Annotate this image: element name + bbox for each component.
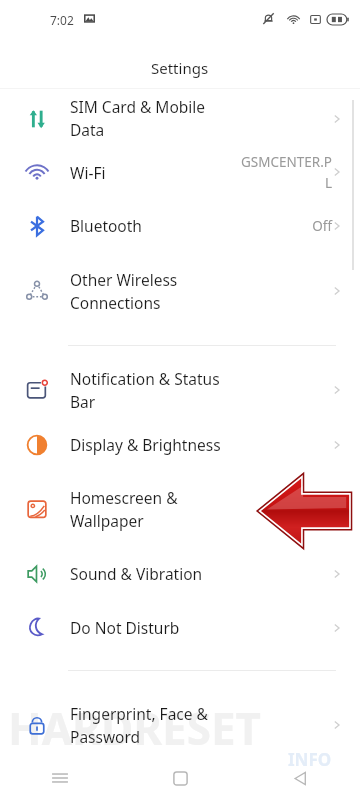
staticText: Fingerprint, Face & Password	[70, 703, 208, 748]
button[interactable]: Homescreen & Wallpaper	[0, 471, 360, 547]
staticText: Bluetooth	[70, 215, 142, 236]
staticText: 7:02	[50, 12, 74, 28]
button[interactable]: Display & Brightness	[0, 418, 360, 471]
button[interactable]: Do Not Disturb	[0, 600, 360, 655]
staticText: HARDRESET	[8, 698, 261, 758]
staticText: Display & Brightness	[70, 434, 221, 455]
staticText: Homescreen & Wallpaper	[70, 487, 178, 532]
button[interactable]: Notification & Status Bar	[0, 362, 360, 418]
staticText: Notification & Status Bar	[70, 368, 240, 413]
button[interactable]: Wi-Fi	[0, 145, 360, 199]
button[interactable]: Back	[240, 756, 360, 800]
staticText: Sound & Vibration	[70, 563, 203, 584]
staticText: Settings	[151, 58, 209, 78]
button[interactable]: Fingerprint, Face & Password	[0, 690, 360, 760]
button[interactable]: Bluetooth	[0, 199, 360, 252]
staticText: Off	[207, 217, 332, 235]
staticText: SIM Card & Mobile Data	[70, 96, 240, 141]
button[interactable]: SIM Card & Mobile Data	[0, 92, 360, 145]
staticText: GSMCENTER.P L	[207, 153, 332, 192]
button[interactable]: Sound & Vibration	[0, 547, 360, 600]
button[interactable]: Home	[120, 756, 240, 800]
button[interactable]: Other Wireless Connections	[0, 252, 360, 330]
staticText: Wi-Fi	[70, 162, 106, 183]
button[interactable]: Recent apps	[0, 756, 120, 800]
staticText: Other Wireless Connections	[70, 269, 178, 314]
staticText: INFO	[288, 748, 332, 771]
staticText: Do Not Disturb	[70, 617, 180, 638]
